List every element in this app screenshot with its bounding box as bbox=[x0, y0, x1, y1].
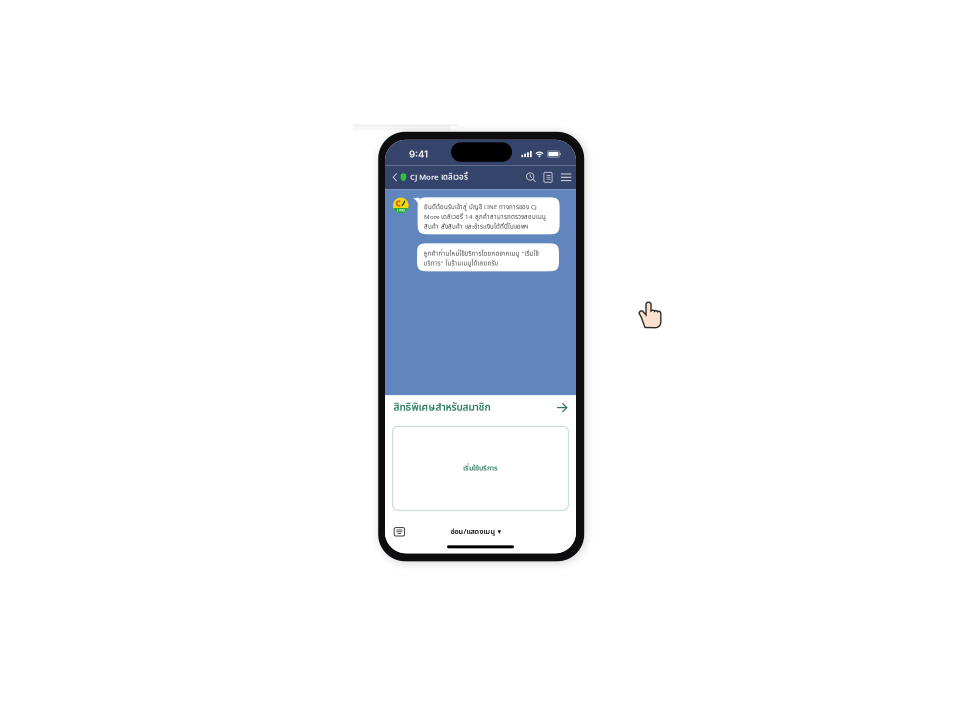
staticText: FOOD bbox=[397, 209, 405, 212]
staticText: 9:41 bbox=[409, 148, 428, 160]
staticText: ลูกค้าท่านใหม่ใช้บริการโดยกดจากเมนู "เริ… bbox=[423, 249, 538, 268]
button[interactable]: Back bbox=[390, 168, 400, 187]
button[interactable]: Notes bbox=[540, 169, 556, 186]
button[interactable]: สิทธิพิเศษสำหรับสมาชิก bbox=[385, 395, 576, 419]
staticText: เริ่มใช้บริการ bbox=[463, 463, 498, 474]
button[interactable]: Menu bbox=[558, 170, 574, 184]
button[interactable]: Keyboard bbox=[391, 524, 408, 539]
staticText: ยินดีต้อนรับเข้าสู่ บัญชี LINE ทางการของ… bbox=[424, 203, 546, 231]
button[interactable]: เริ่มใช้บริการ bbox=[393, 426, 568, 510]
button[interactable]: Search bbox=[523, 169, 539, 185]
staticText: ซ่อน/แสดงเมนู ▾ bbox=[450, 526, 501, 537]
staticText: สิทธิพิเศษสำหรับสมาชิก bbox=[393, 400, 490, 415]
staticText: CJ More เดลิเวอรี่ bbox=[410, 171, 468, 183]
